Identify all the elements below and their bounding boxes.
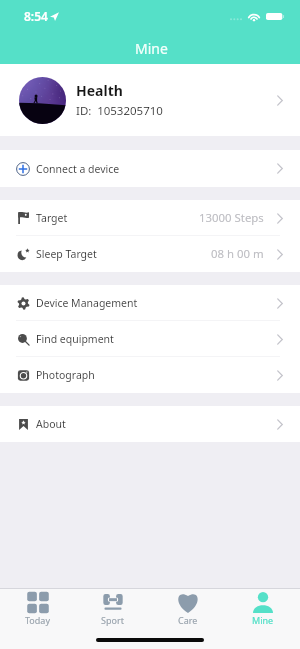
button[interactable]: Connect a device [0,150,300,187]
staticText: Target [36,211,68,225]
staticText: Photograph [36,368,95,382]
staticText: Connect a device [36,162,120,176]
staticText: ID: 1053205710 [76,103,163,119]
staticText: Sport [101,614,124,626]
button[interactable]: Health [0,64,300,136]
staticText: Mine [135,39,168,58]
button[interactable]: Target [0,200,300,236]
button[interactable]: Sleep Target [0,236,300,272]
staticText: About [36,417,66,431]
staticText: 8:54 [24,8,48,24]
button[interactable]: Sport [75,589,150,626]
staticText: 08 h 00 m [211,246,264,262]
button[interactable]: Care [150,589,225,626]
button[interactable]: Today [0,589,75,626]
button[interactable]: Photograph [0,357,300,393]
staticText: Health [76,81,123,100]
staticText: Sleep Target [36,247,97,261]
button[interactable]: Find equipment [0,321,300,357]
staticText: Device Management [36,296,138,310]
staticText: Care [178,614,198,626]
staticText: Find equipment [36,332,114,346]
other: Connect a device [16,162,30,176]
button[interactable]: Device Management [0,285,300,321]
staticText: Today [25,614,50,626]
button[interactable]: Mine [225,589,300,626]
button[interactable]: About [0,406,300,442]
staticText: 13000 Steps [199,210,264,226]
staticText: Mine [252,614,274,626]
